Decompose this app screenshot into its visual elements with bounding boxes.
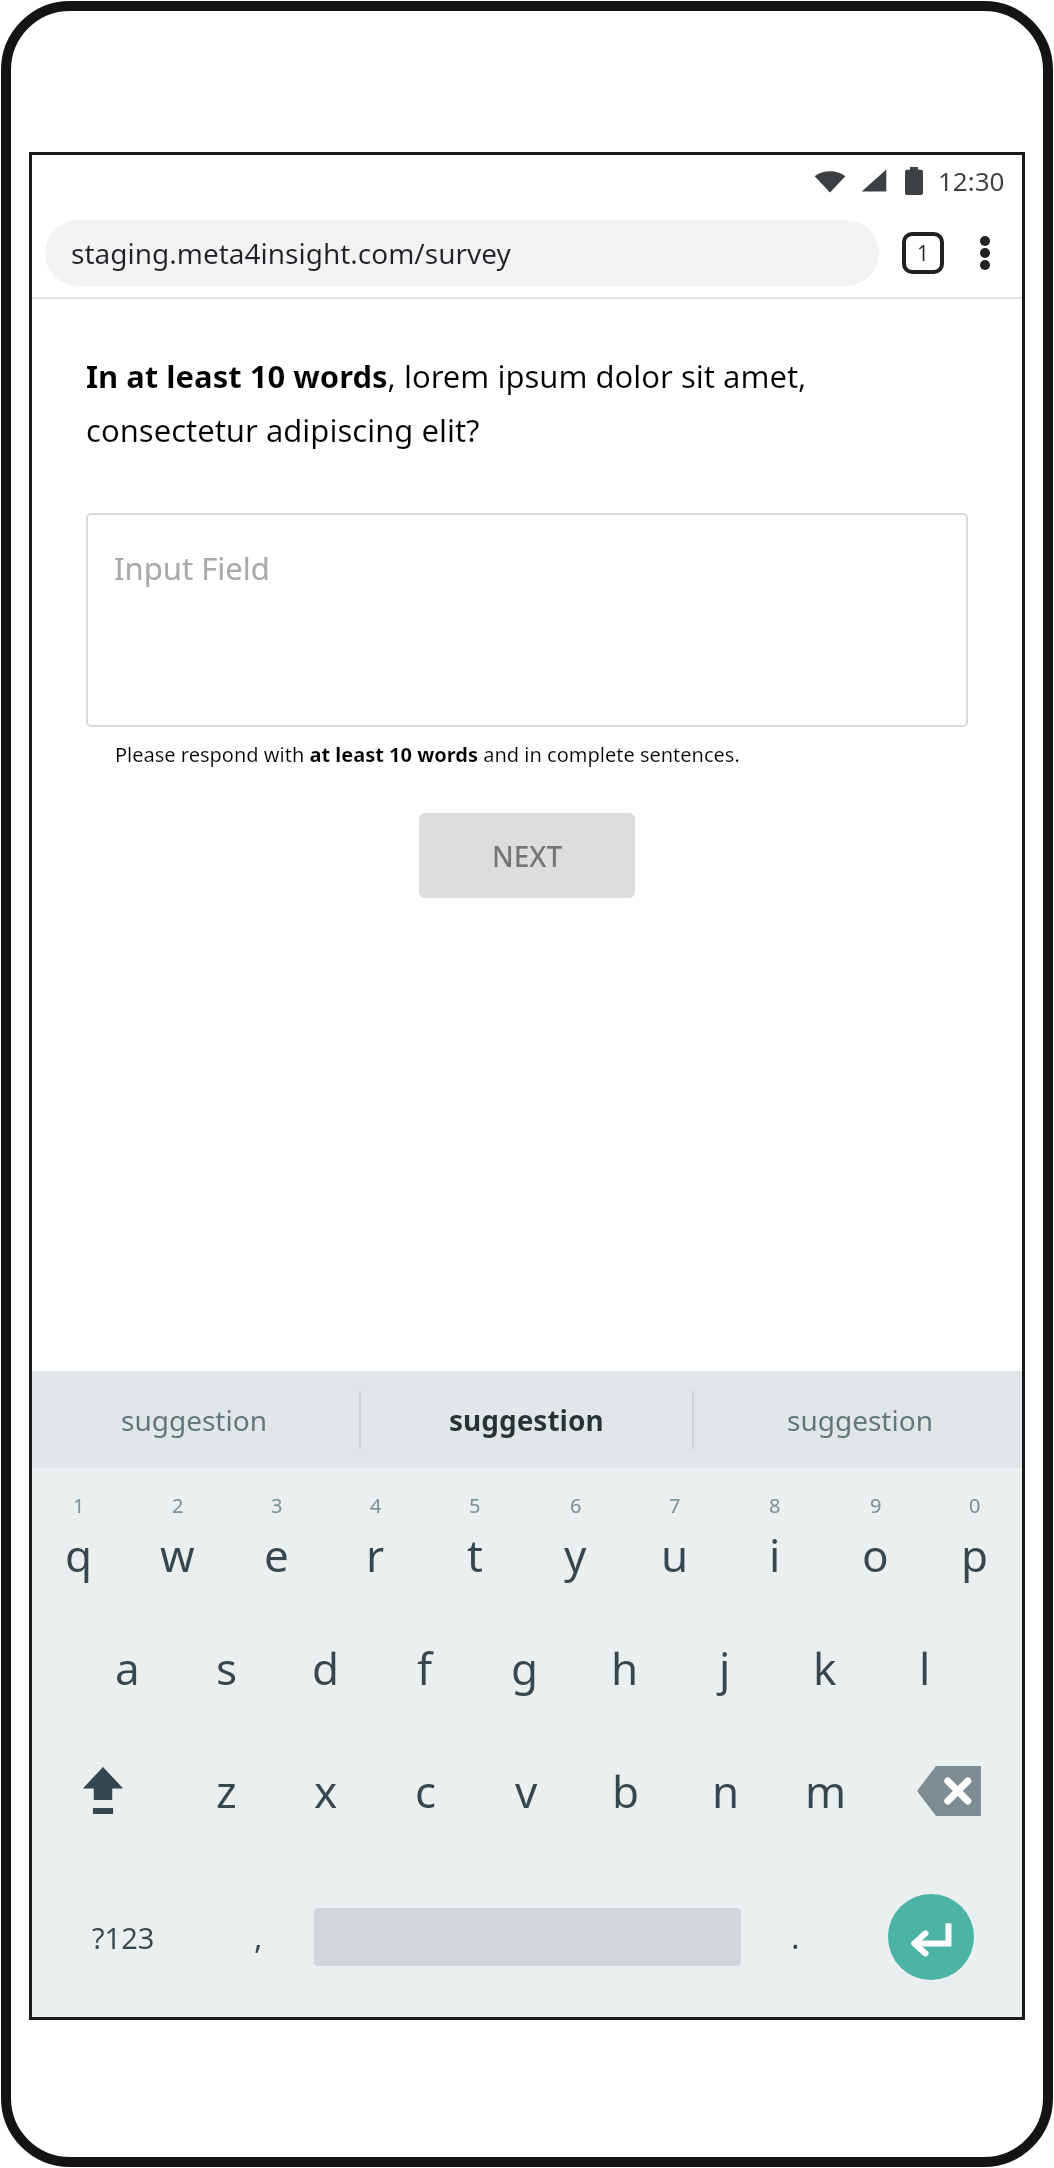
button[interactable]: a: [78, 1608, 177, 1728]
staticText: Input Field: [114, 547, 270, 589]
button[interactable]: Backspace: [876, 1728, 1025, 1854]
button[interactable]: 9: [825, 1468, 925, 1608]
staticText: l: [919, 1638, 931, 1698]
staticText: 1: [917, 239, 930, 268]
staticText: 6: [570, 1492, 582, 1519]
button[interactable]: 7: [625, 1468, 725, 1608]
button[interactable]: 6: [525, 1468, 625, 1608]
staticText: In at least 10 words, lorem ipsum dolor …: [86, 355, 968, 451]
staticText: suggestion: [449, 1401, 604, 1439]
button[interactable]: Space: [300, 1854, 754, 2020]
button[interactable]: s: [177, 1608, 276, 1728]
button[interactable]: More options: [961, 229, 1009, 277]
staticText: s: [216, 1638, 238, 1698]
button[interactable]: l: [875, 1608, 975, 1728]
staticText: p: [961, 1525, 989, 1585]
staticText: h: [611, 1638, 639, 1698]
staticText: m: [805, 1761, 847, 1821]
staticText: suggestion: [787, 1401, 933, 1439]
staticText: Please respond with at least 10 words an…: [115, 741, 740, 768]
button[interactable]: b: [576, 1728, 676, 1854]
staticText: r: [366, 1525, 385, 1585]
staticText: k: [813, 1638, 837, 1698]
button[interactable]: h: [575, 1608, 675, 1728]
staticText: suggestion: [121, 1401, 267, 1439]
button[interactable]: x: [276, 1728, 376, 1854]
staticText: staging.meta4insight.com/survey: [71, 234, 511, 272]
staticText: 7: [669, 1492, 681, 1519]
staticText: b: [612, 1761, 640, 1821]
staticText: o: [862, 1525, 889, 1585]
button[interactable]: 2: [128, 1468, 227, 1608]
button[interactable]: g: [475, 1608, 575, 1728]
button[interactable]: k: [775, 1608, 875, 1728]
staticText: a: [115, 1638, 140, 1698]
staticText: ?123: [92, 1918, 155, 1957]
staticText: 3: [271, 1492, 283, 1519]
staticText: 1: [73, 1492, 85, 1519]
staticText: w: [160, 1525, 195, 1585]
staticText: z: [216, 1761, 237, 1821]
staticText: j: [719, 1638, 731, 1698]
staticText: 0: [969, 1492, 981, 1519]
staticText: e: [264, 1525, 289, 1585]
staticText: 12:30: [938, 163, 1005, 198]
button[interactable]: suggestion: [29, 1371, 359, 1468]
button[interactable]: j: [675, 1608, 775, 1728]
button[interactable]: 4: [326, 1468, 425, 1608]
button[interactable]: .: [754, 1854, 837, 2020]
button[interactable]: Input Field: [86, 513, 968, 727]
staticText: c: [415, 1761, 437, 1821]
button[interactable]: n: [676, 1728, 776, 1854]
staticText: NEXT: [492, 837, 563, 875]
button[interactable]: ,: [217, 1854, 300, 2020]
staticText: 4: [370, 1492, 382, 1519]
button[interactable]: 8: [725, 1468, 825, 1608]
staticText: ,: [254, 1915, 263, 1959]
staticText: q: [65, 1525, 93, 1585]
button[interactable]: 0: [925, 1468, 1025, 1608]
button[interactable]: 1: [29, 1468, 128, 1608]
staticText: g: [511, 1638, 539, 1698]
button[interactable]: v: [476, 1728, 576, 1854]
button[interactable]: suggestion: [694, 1371, 1025, 1468]
button[interactable]: Enter: [837, 1854, 1025, 2020]
button[interactable]: staging.meta4insight.com/survey: [45, 220, 879, 286]
staticText: 9: [870, 1492, 882, 1519]
button[interactable]: Shift: [29, 1728, 177, 1854]
staticText: n: [712, 1761, 740, 1821]
staticText: y: [564, 1525, 587, 1585]
button[interactable]: 3: [227, 1468, 326, 1608]
staticText: u: [661, 1525, 689, 1585]
staticText: d: [312, 1638, 340, 1698]
button[interactable]: suggestion: [361, 1371, 692, 1468]
staticText: 8: [769, 1492, 781, 1519]
staticText: x: [314, 1761, 338, 1821]
staticText: i: [769, 1525, 781, 1585]
staticText: .: [791, 1915, 800, 1959]
button[interactable]: z: [177, 1728, 276, 1854]
button[interactable]: f: [375, 1608, 475, 1728]
button[interactable]: c: [376, 1728, 476, 1854]
button[interactable]: d: [276, 1608, 375, 1728]
staticText: f: [417, 1638, 433, 1698]
staticText: t: [467, 1525, 483, 1585]
staticText: 5: [469, 1492, 481, 1519]
button[interactable]: NEXT: [419, 813, 635, 898]
button[interactable]: m: [776, 1728, 876, 1854]
button[interactable]: 1 open tab: [899, 229, 947, 277]
button[interactable]: ?123: [29, 1854, 217, 2020]
button[interactable]: 5: [425, 1468, 525, 1608]
staticText: v: [515, 1761, 538, 1821]
staticText: 2: [172, 1492, 184, 1519]
